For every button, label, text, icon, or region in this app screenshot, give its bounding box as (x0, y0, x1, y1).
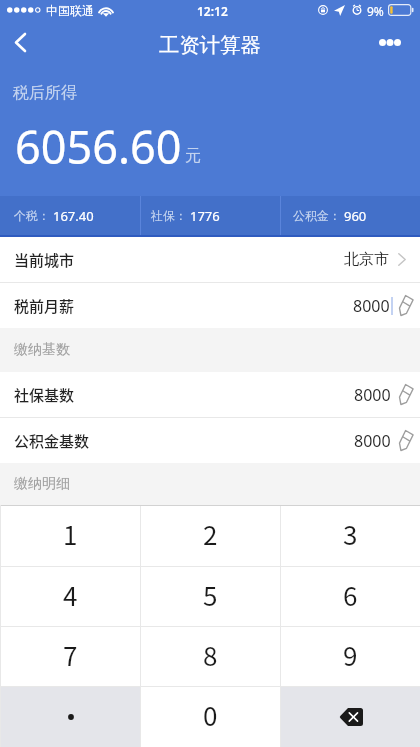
staticText: 北京市 (344, 250, 389, 269)
staticText: 2 (203, 515, 218, 553)
button[interactable]: 公积金基数 (0, 418, 420, 463)
staticText: 9% (367, 3, 384, 19)
button[interactable]: 3 (281, 506, 420, 566)
button[interactable]: More options (368, 20, 420, 64)
staticText: 当前城市 (14, 249, 75, 271)
button[interactable]: 社保基数 (0, 372, 420, 417)
staticText: 6056.60 (15, 116, 182, 177)
staticText: 个税： (14, 208, 50, 223)
staticText: 1776 (190, 207, 220, 225)
staticText: 公积金基数 (14, 430, 90, 452)
button[interactable]: 6 (281, 567, 420, 626)
staticText: 1 (63, 515, 78, 553)
button[interactable]: 2 (141, 506, 280, 566)
button[interactable]: 5 (141, 567, 280, 626)
staticText: 167.40 (53, 207, 94, 225)
staticText: 8000 (354, 430, 391, 452)
staticText: 8000 (354, 384, 391, 406)
button[interactable]: 4 (1, 567, 140, 626)
staticText: 社保： (151, 208, 187, 223)
staticText: 税后所得 (13, 83, 77, 103)
button[interactable]: Backspace (281, 687, 420, 747)
button[interactable]: Back (0, 20, 44, 64)
button[interactable]: 0 (141, 687, 280, 747)
staticText: 5 (203, 576, 218, 614)
button[interactable]: Decimal point (1, 687, 140, 747)
button[interactable]: 税前月薪 (0, 283, 420, 328)
button[interactable]: 1 (1, 506, 140, 566)
staticText: 12:12 (197, 3, 228, 19)
staticText: 8000 (353, 295, 390, 317)
staticText: 税前月薪 (14, 295, 75, 317)
staticText: 0 (203, 696, 218, 734)
staticText: 8 (203, 636, 218, 674)
staticText: 9 (343, 636, 358, 674)
staticText: 社保基数 (14, 384, 75, 406)
staticText: 缴纳明细 (14, 475, 70, 493)
button[interactable]: 8 (141, 627, 280, 686)
button[interactable]: 9 (281, 627, 420, 686)
staticText: 7 (63, 636, 78, 674)
staticText: 公积金： (293, 208, 341, 223)
button[interactable]: 7 (1, 627, 140, 686)
staticText: 缴纳基数 (14, 341, 70, 359)
staticText: 960 (344, 207, 367, 225)
staticText: 中国联通 (46, 3, 94, 18)
staticText: 元 (185, 146, 201, 166)
staticText: 工资计算器 (159, 32, 261, 58)
staticText: 4 (63, 576, 78, 614)
staticText: 3 (343, 515, 358, 553)
staticText: 6 (343, 576, 358, 614)
button[interactable]: 当前城市 (0, 237, 420, 282)
